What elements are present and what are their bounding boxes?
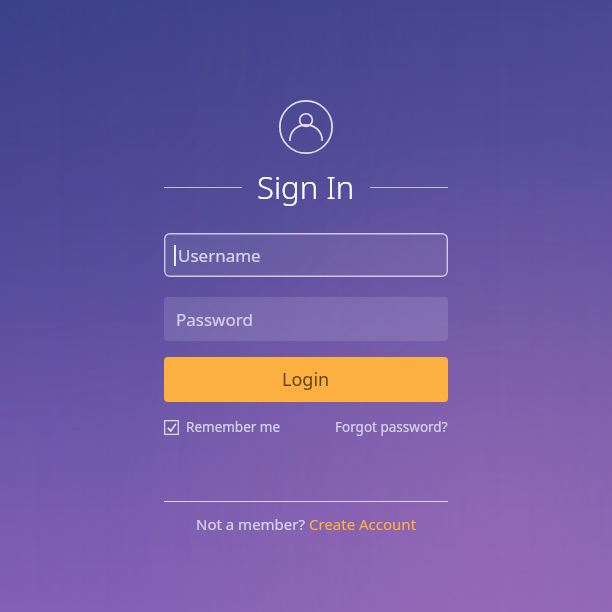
staticText: Login	[282, 367, 330, 392]
staticText: Create Account	[309, 514, 417, 534]
staticText: Sign In	[257, 166, 355, 208]
button[interactable]: Forgot password?	[335, 416, 448, 438]
staticText: Username	[178, 244, 261, 267]
button[interactable]: Password	[164, 297, 448, 341]
button[interactable]: Login	[164, 357, 448, 402]
staticText: Forgot password?	[335, 418, 448, 436]
staticText: Password	[176, 308, 253, 331]
button[interactable]: Username	[164, 233, 448, 277]
button[interactable]: Remember me	[164, 416, 281, 438]
other: User avatar	[279, 100, 333, 154]
staticText: Not a member?	[196, 514, 309, 534]
button[interactable]: Create Account	[309, 514, 417, 534]
staticText: Remember me	[186, 418, 281, 436]
